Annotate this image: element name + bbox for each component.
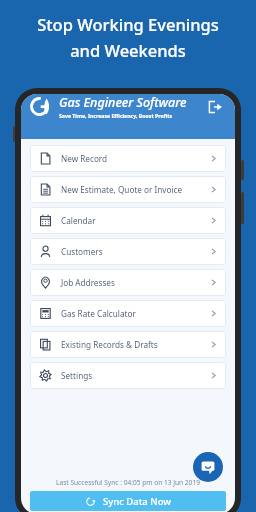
staticText: Job Addresses (61, 277, 210, 288)
staticText: Sync Data Now (103, 495, 171, 508)
staticText: Last Successful Sync : 04:05 pm on 13 Ju… (56, 478, 200, 487)
button[interactable]: New Estimate, Quote or Invoice (30, 176, 226, 203)
staticText: Customers (61, 246, 210, 257)
staticText: Gas Engineer Software (59, 94, 187, 111)
button[interactable]: Log out (203, 95, 227, 119)
staticText: New Record (61, 153, 210, 164)
button[interactable]: New Record (30, 145, 226, 172)
staticText: Save Time, Increase Efficiency, Boost Pr… (59, 112, 173, 119)
button[interactable]: Chat support (193, 452, 223, 482)
staticText: Calendar (61, 215, 210, 226)
button[interactable]: Gas Rate Calculator (30, 300, 226, 327)
staticText: Settings (61, 370, 210, 381)
staticText: Existing Records & Drafts (61, 339, 210, 350)
staticText: Stop Working Evenings (37, 13, 219, 35)
button[interactable]: Job Addresses (30, 269, 226, 296)
staticText: New Estimate, Quote or Invoice (61, 184, 210, 195)
staticText: Gas Rate Calculator (61, 308, 210, 319)
button[interactable]: Calendar (30, 207, 226, 234)
staticText: and Weekends (70, 39, 186, 61)
button[interactable]: Settings (30, 362, 226, 389)
button[interactable]: Sync Data Now (30, 491, 226, 511)
button[interactable]: Customers (30, 238, 226, 265)
button[interactable]: Existing Records & Drafts (30, 331, 226, 358)
